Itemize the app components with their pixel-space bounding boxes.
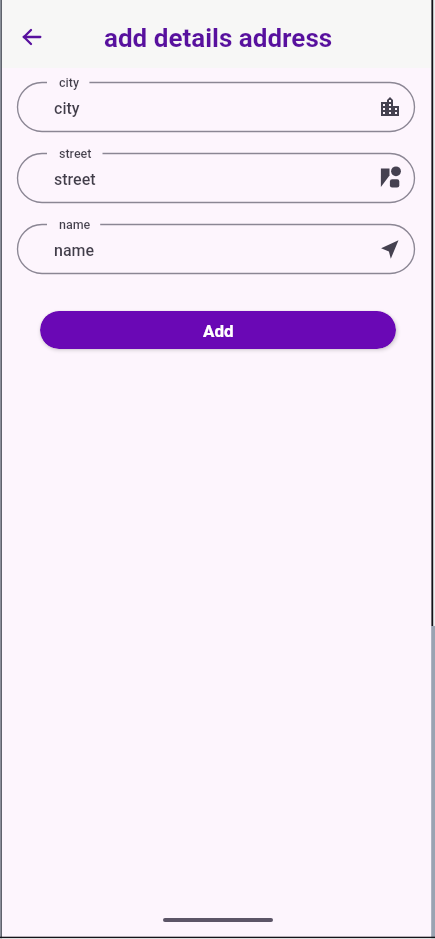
staticText: city [54, 99, 80, 118]
staticText: street [59, 146, 92, 161]
staticText: Add [203, 321, 234, 341]
button[interactable]: city [17, 82, 415, 132]
button[interactable]: street [17, 153, 415, 203]
button[interactable]: name [17, 224, 415, 274]
button[interactable]: Back [16, 18, 48, 50]
button[interactable]: Add [40, 311, 396, 349]
staticText: name [59, 217, 91, 232]
staticText: add details address [104, 23, 333, 53]
staticText: name [54, 241, 95, 260]
staticText: street [54, 170, 96, 189]
staticText: city [59, 75, 79, 90]
